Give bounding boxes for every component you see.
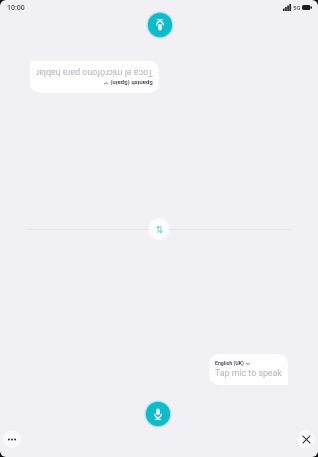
button[interactable]: English (UK) <box>209 354 288 385</box>
button[interactable]: More options <box>3 430 21 448</box>
button[interactable]: Close <box>297 430 315 448</box>
staticText: English (UK) <box>215 360 244 366</box>
staticText: 5G <box>293 4 301 11</box>
button[interactable]: Microphone <box>148 13 172 37</box>
staticText: Tap mic to speak <box>215 368 282 378</box>
button[interactable]: Microphone <box>146 402 170 426</box>
button[interactable]: Spanish (Spain) <box>30 61 159 93</box>
staticText: Spanish (Spain) <box>110 80 153 87</box>
staticText: 10:00 <box>7 4 25 12</box>
staticText: Toca el micrófono para hablar <box>36 68 153 78</box>
